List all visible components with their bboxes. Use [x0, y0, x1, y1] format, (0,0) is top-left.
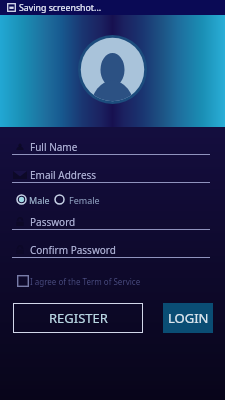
staticText: Confirm Password — [30, 243, 116, 257]
button[interactable]: LOGIN — [163, 303, 213, 333]
staticText: LOGIN — [168, 309, 209, 327]
button[interactable]: Email Address — [12, 167, 210, 182]
button[interactable]: Full Name — [12, 139, 210, 154]
button[interactable]: Confirm Password — [12, 242, 210, 257]
button[interactable]: Male — [16, 192, 50, 207]
staticText: Email Address — [30, 168, 97, 182]
staticText: I agree of the Term of Service — [30, 276, 141, 287]
staticText: REGISTER — [49, 309, 108, 327]
button[interactable]: Female — [54, 192, 100, 207]
button[interactable]: I agree of the Term of Service — [17, 273, 141, 289]
staticText: Password — [30, 215, 76, 229]
button[interactable]: Password — [12, 214, 210, 229]
staticText: Full Name — [30, 140, 78, 154]
staticText: Female — [69, 194, 100, 206]
button[interactable]: REGISTER — [13, 303, 143, 333]
staticText: Male — [29, 194, 50, 206]
staticText: Saving screenshot... — [19, 2, 102, 14]
